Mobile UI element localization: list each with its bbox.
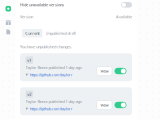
button[interactable]: Current [22,29,42,37]
button[interactable]: Files [4,27,13,36]
staticText: Current [25,30,39,36]
button[interactable]: View [97,101,112,109]
button[interactable]: App home [4,4,13,13]
staticText: v1 [27,57,31,63]
staticText: Hide unavailable versions [20,2,64,7]
staticText: Version [20,14,33,19]
staticText: Taylor Reese published 1 day ago [25,65,81,70]
staticText: View [100,102,108,108]
staticText: Available [116,14,132,19]
button[interactable]: Unpublished draft [42,29,79,37]
staticText: https://github.com/taylorr [30,106,73,111]
staticText: Unpublished draft [46,30,76,36]
button[interactable]: Library [4,18,13,27]
button[interactable]: Hide unavailable versions [121,2,132,8]
staticText: View [100,68,108,74]
button[interactable]: Version enabled [114,68,126,74]
button[interactable]: Version enabled [114,102,126,108]
staticText: You have unpublished changes. [20,44,72,49]
staticText: Taylor Reese published 1 day ago [25,99,81,104]
button[interactable]: View [97,67,112,75]
staticText: https://github.com/taylorr [30,72,73,77]
staticText: v2 [27,91,31,97]
